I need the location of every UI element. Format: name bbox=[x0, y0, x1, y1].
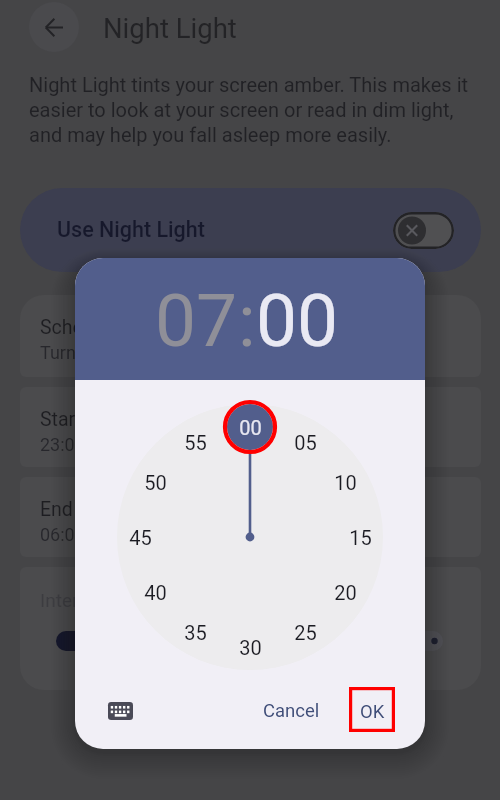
button[interactable]: Use Night Light toggle, off bbox=[393, 212, 454, 249]
staticText: Start time bbox=[40, 408, 126, 431]
staticText: 30 bbox=[239, 636, 262, 659]
button[interactable]: Switch to text input bbox=[97, 694, 143, 727]
button[interactable]: End time bbox=[20, 477, 481, 557]
staticText: 50 bbox=[144, 471, 167, 494]
button[interactable]: OK bbox=[349, 689, 395, 734]
staticText: Use Night Light bbox=[57, 217, 205, 242]
staticText: 35 bbox=[184, 621, 207, 644]
button[interactable]: 07 bbox=[155, 278, 238, 364]
button[interactable]: 35 bbox=[171, 608, 219, 656]
staticText: : bbox=[238, 278, 256, 364]
staticText: 45 bbox=[129, 526, 152, 549]
button[interactable]: 45 bbox=[116, 513, 164, 561]
button[interactable]: 20 bbox=[321, 568, 369, 616]
staticText: 20 bbox=[334, 581, 357, 604]
button[interactable]: Use Night Light bbox=[20, 188, 481, 272]
button[interactable]: 40 bbox=[131, 568, 179, 616]
staticText: End time bbox=[40, 498, 117, 521]
staticText: OK bbox=[360, 701, 385, 723]
staticText: 15 bbox=[349, 526, 372, 549]
button[interactable]: 00 bbox=[256, 278, 339, 364]
staticText: 40 bbox=[144, 581, 167, 604]
staticText: 07 bbox=[155, 278, 238, 364]
staticText: Night Light bbox=[103, 12, 237, 44]
button[interactable]: 30 bbox=[226, 623, 274, 671]
button[interactable]: 00 bbox=[226, 403, 274, 451]
staticText: 10 bbox=[334, 471, 357, 494]
staticText: 05 bbox=[294, 431, 317, 454]
button[interactable]: 55 bbox=[171, 418, 219, 466]
staticText: Turns on at custom time bbox=[40, 342, 235, 363]
button[interactable]: 15 bbox=[336, 513, 384, 561]
button[interactable]: Start time bbox=[20, 387, 481, 467]
staticText: 55 bbox=[184, 431, 207, 454]
button[interactable]: 25 bbox=[281, 608, 329, 656]
button[interactable]: 50 bbox=[131, 458, 179, 506]
staticText: 00 bbox=[256, 278, 339, 364]
button[interactable]: 05 bbox=[281, 418, 329, 466]
staticText: Intensity bbox=[40, 589, 113, 611]
staticText: Schedule bbox=[40, 316, 120, 339]
staticText: 23:00 bbox=[40, 434, 85, 455]
button[interactable]: 10 bbox=[321, 458, 369, 506]
button[interactable]: Back bbox=[29, 2, 79, 52]
staticText: Night Light tints your screen amber. Thi… bbox=[29, 73, 473, 147]
staticText: 25 bbox=[294, 621, 317, 644]
staticText: 06:00 bbox=[40, 524, 85, 545]
staticText: Cancel bbox=[263, 700, 320, 722]
button[interactable]: Schedule bbox=[20, 295, 481, 377]
button[interactable]: Cancel bbox=[256, 694, 326, 727]
staticText: 00 bbox=[239, 416, 262, 439]
